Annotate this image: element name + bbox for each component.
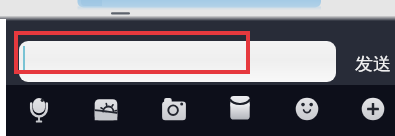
button[interactable]: Camera xyxy=(150,85,198,136)
button[interactable]: Emoji xyxy=(283,85,331,136)
staticText: 发送 xyxy=(355,53,391,76)
button[interactable]: More options xyxy=(349,85,395,136)
button[interactable]: Photo xyxy=(82,85,130,136)
button[interactable]: Files xyxy=(216,85,264,136)
button[interactable] xyxy=(19,41,336,82)
button[interactable]: 发送 xyxy=(355,53,395,98)
button[interactable]: Voice message xyxy=(15,85,63,136)
